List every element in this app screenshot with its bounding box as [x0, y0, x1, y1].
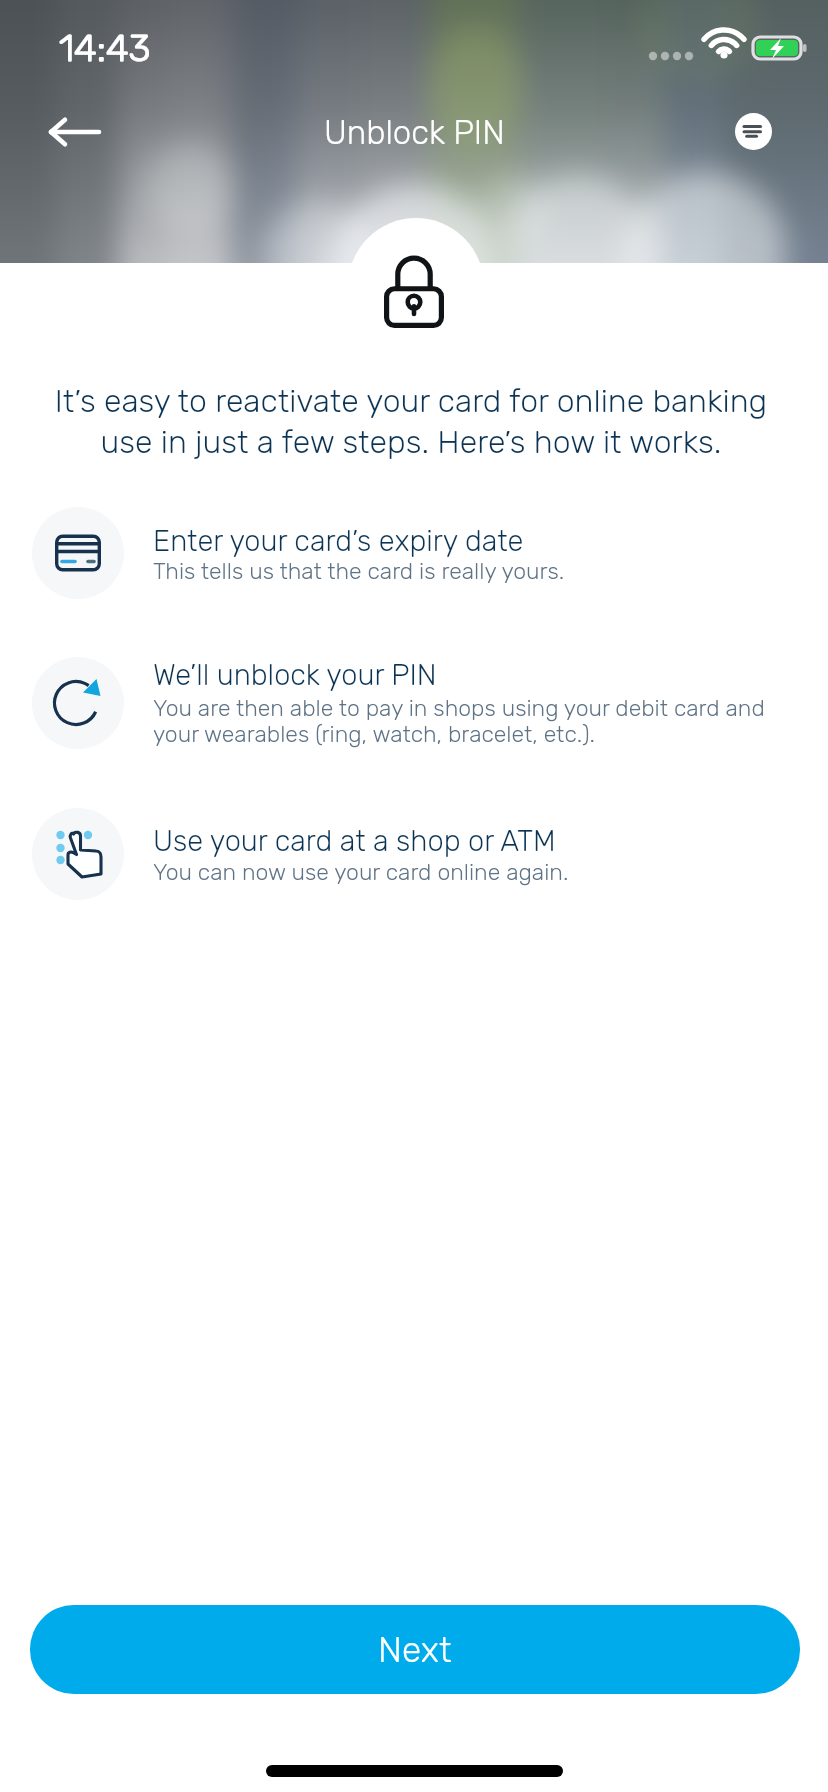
- staticText: Use your card at a shop or ATM: [153, 824, 556, 858]
- button[interactable]: Chat: [735, 113, 772, 150]
- staticText: Unblock PIN: [324, 113, 505, 152]
- button[interactable]: Next: [30, 1605, 800, 1694]
- staticText: It’s easy to reactivate your card for on…: [41, 382, 781, 461]
- staticText: Enter your card’s expiry date: [153, 524, 524, 558]
- staticText: This tells us that the card is really yo…: [153, 557, 565, 584]
- staticText: You are then able to pay in shops using …: [153, 694, 775, 748]
- staticText: Next: [378, 1629, 452, 1670]
- staticText: You can now use your card online again.: [153, 858, 569, 885]
- staticText: 14:43: [59, 25, 151, 70]
- button[interactable]: Back: [30, 102, 118, 162]
- staticText: We’ll unblock your PIN: [153, 658, 437, 692]
